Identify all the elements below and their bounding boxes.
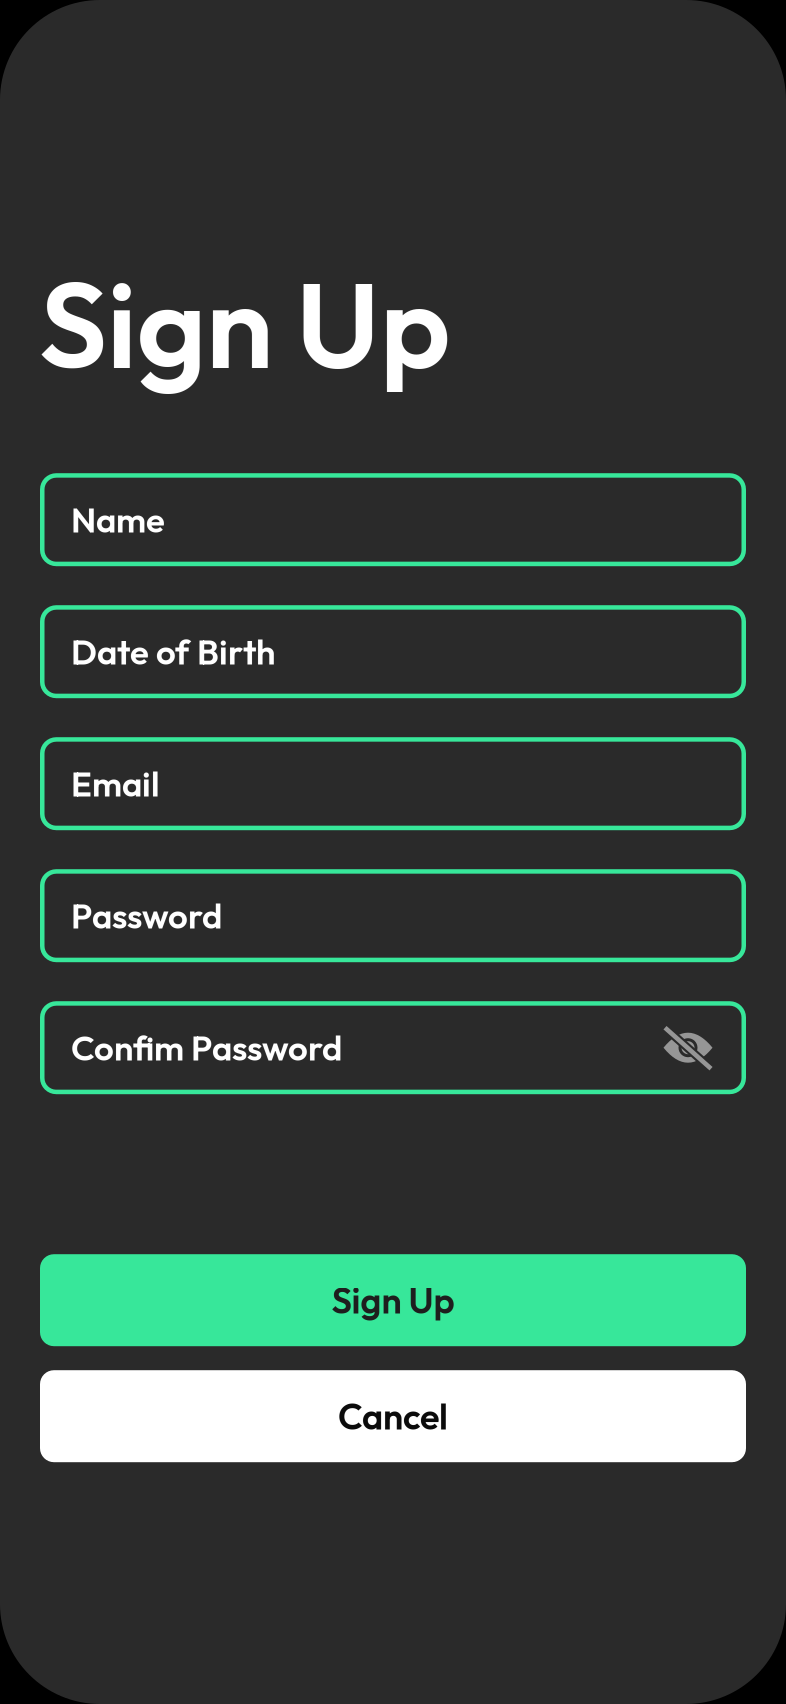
staticText: Date of Birth (71, 630, 275, 674)
staticText: Name (71, 498, 165, 542)
staticText: Cancel (338, 1393, 448, 1439)
staticText: Email (71, 762, 160, 806)
button[interactable]: Sign Up (40, 1254, 746, 1346)
button[interactable]: Show password (661, 1026, 715, 1070)
staticText: Password (71, 894, 222, 938)
staticText: Sign Up (39, 248, 451, 399)
staticText: Sign Up (331, 1277, 454, 1323)
button[interactable]: Cancel (40, 1370, 746, 1462)
staticText: Confim Password (71, 1026, 342, 1070)
